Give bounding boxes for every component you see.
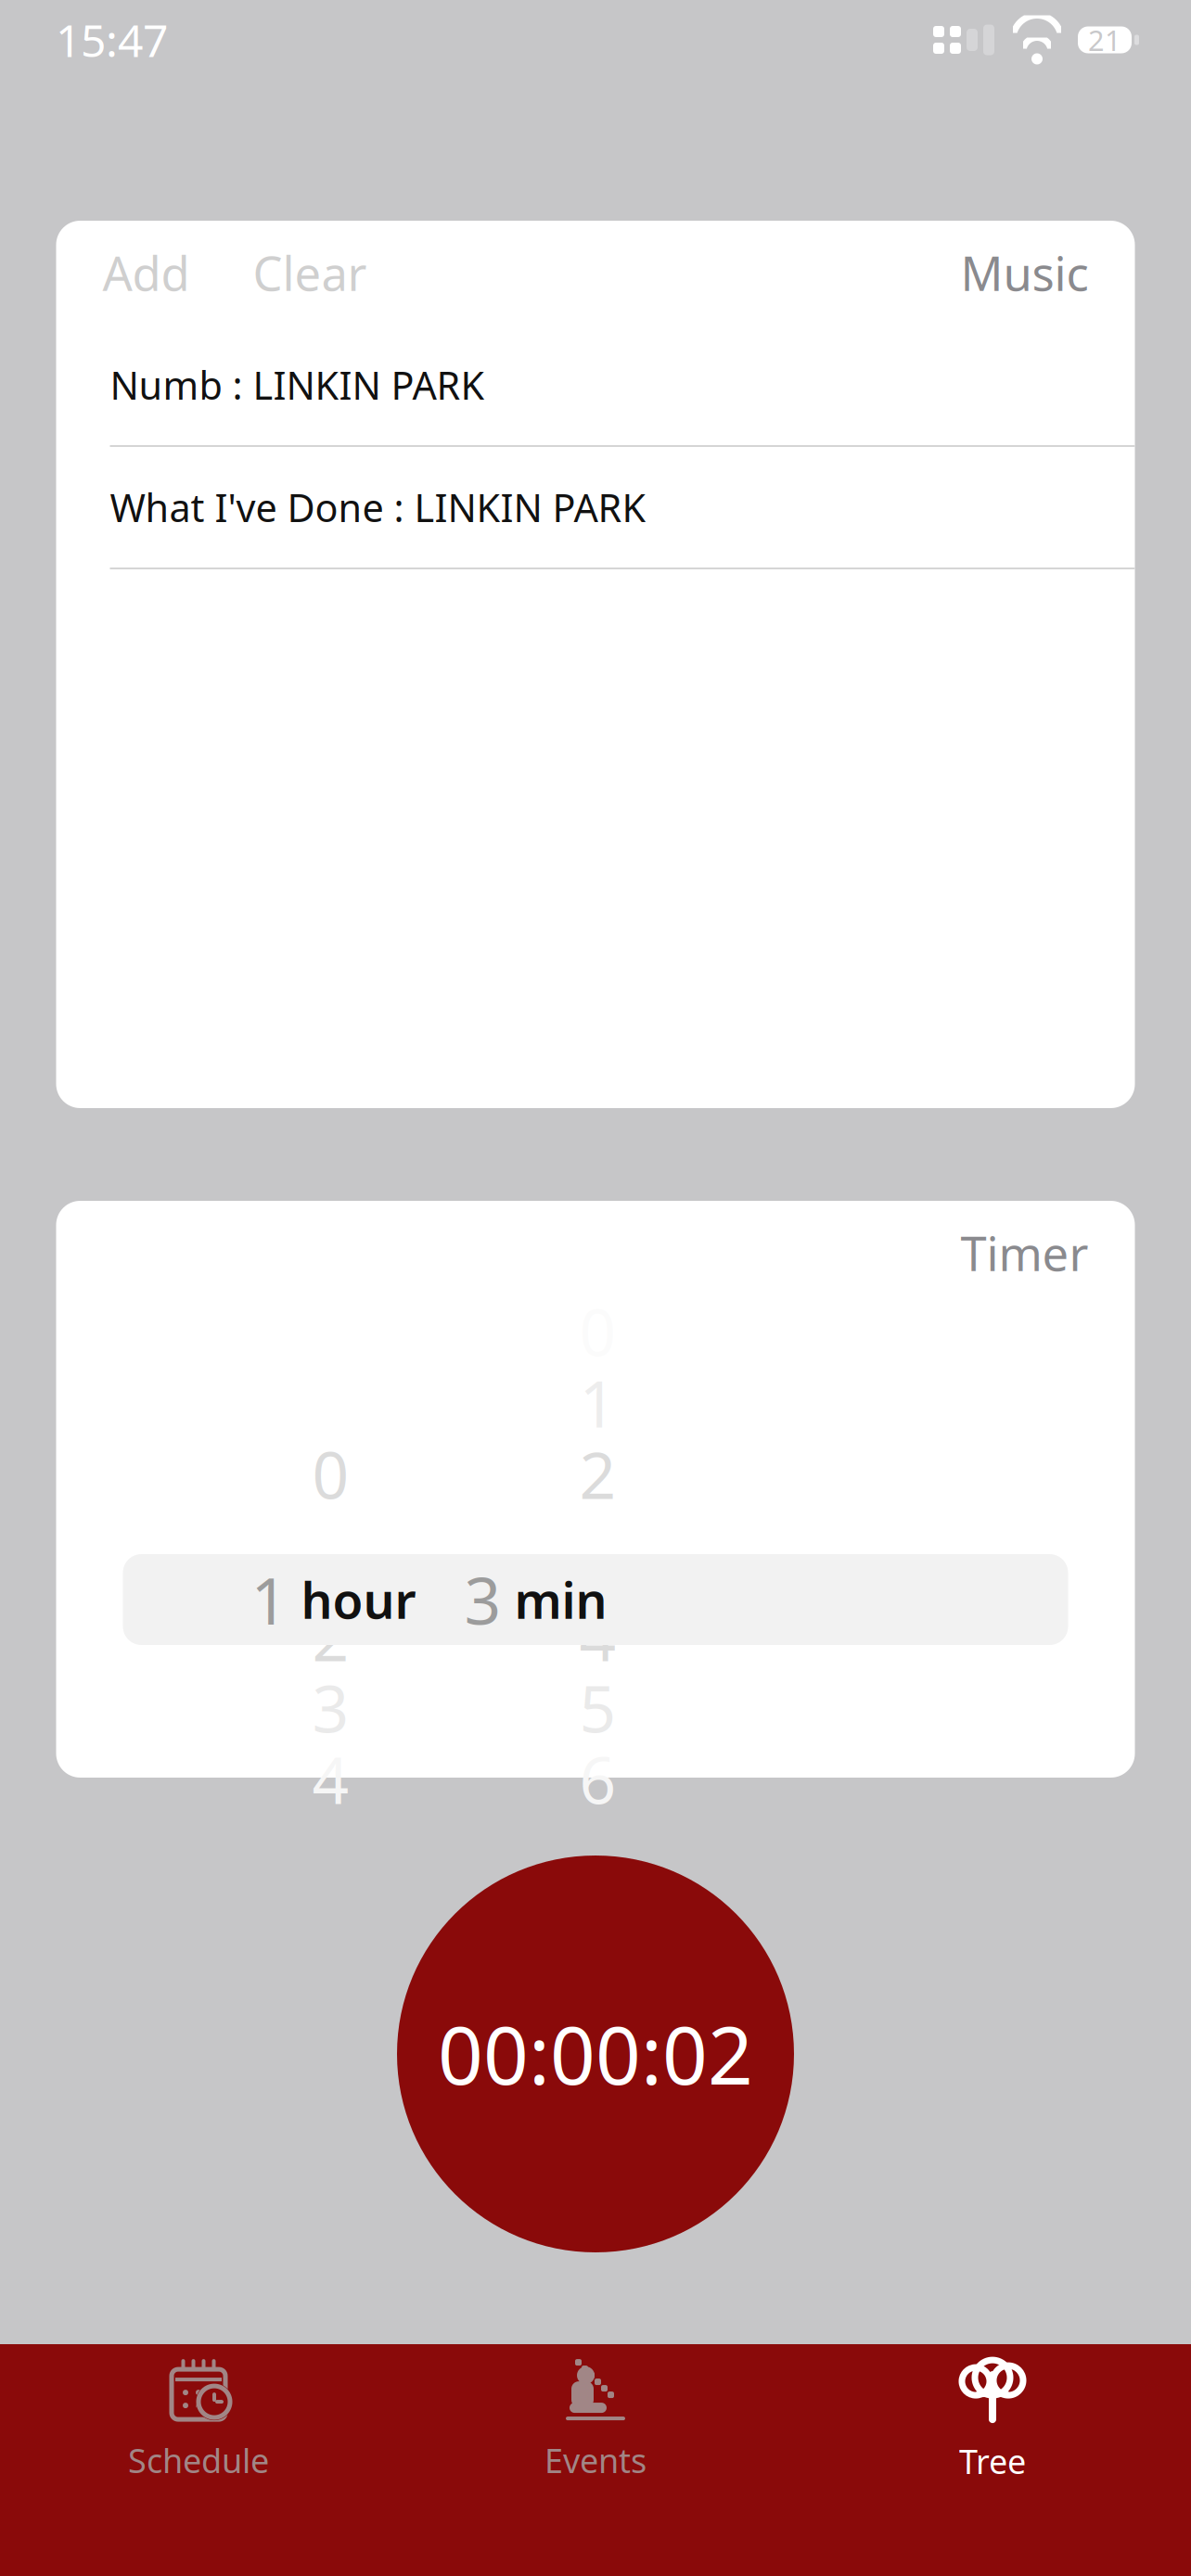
staticText: Timer: [960, 1222, 1089, 1284]
staticText: 5: [579, 1665, 616, 1750]
staticText: 2: [312, 1594, 349, 1679]
button[interactable]: What I've Done : LINKIN PARK: [56, 447, 1135, 569]
button[interactable]: Events: [397, 2344, 794, 2496]
button[interactable]: Schedule: [0, 2344, 397, 2496]
staticText: Tree: [959, 2439, 1026, 2483]
staticText: min: [514, 1567, 607, 1632]
staticText: 0: [312, 1431, 349, 1517]
button[interactable]: Music: [951, 230, 1098, 315]
staticText: Clear: [253, 241, 367, 304]
staticText: 21: [1088, 21, 1121, 59]
staticText: Music: [960, 241, 1089, 304]
staticText: 3: [312, 1665, 349, 1750]
staticText: 1: [251, 1557, 288, 1642]
staticText: Schedule: [128, 2438, 269, 2482]
staticText: Events: [544, 2438, 647, 2482]
staticText: hour: [301, 1567, 416, 1632]
button[interactable]: 00:00:02: [397, 1855, 794, 2252]
staticText: 00:00:02: [438, 2001, 753, 2106]
staticText: 1: [579, 1360, 616, 1445]
button[interactable]: Add: [93, 230, 199, 315]
staticText: 4: [579, 1594, 616, 1679]
staticText: Add: [102, 241, 190, 304]
button[interactable]: Clear: [243, 230, 376, 315]
button[interactable]: Timer: [951, 1210, 1098, 1295]
button[interactable]: Tree: [794, 2344, 1191, 2496]
button[interactable]: Numb : LINKIN PARK: [56, 325, 1135, 447]
staticText: 6: [579, 1736, 616, 1822]
staticText: What I've Done : LINKIN PARK: [110, 482, 646, 533]
staticText: 4: [312, 1736, 349, 1822]
staticText: 3: [464, 1557, 501, 1642]
staticText: 15:47: [56, 10, 168, 69]
staticText: Numb : LINKIN PARK: [110, 359, 485, 410]
staticText: 2: [579, 1431, 616, 1517]
